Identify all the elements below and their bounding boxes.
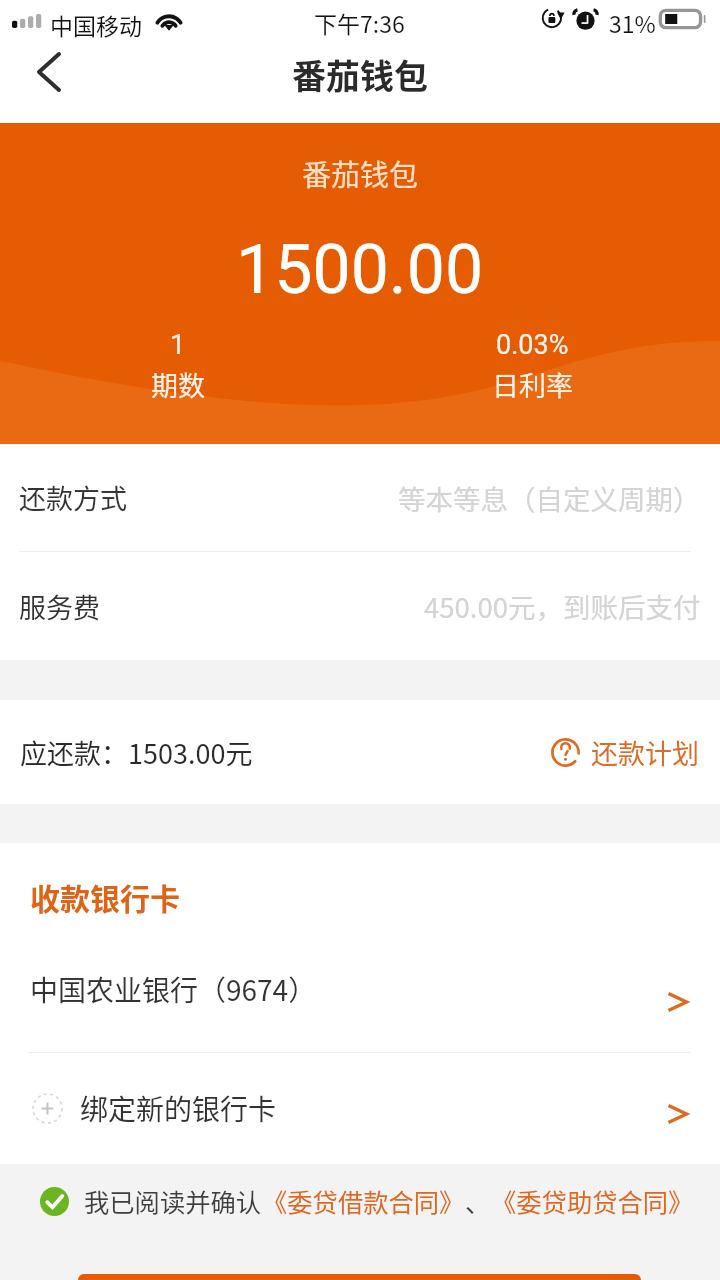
staticText: 1500.00 bbox=[236, 230, 484, 310]
button[interactable]: 还款方式 bbox=[0, 444, 720, 551]
button[interactable]: 绑定新的银行卡 bbox=[0, 1053, 720, 1164]
staticText: 450.00元，到账后支付 bbox=[424, 586, 701, 626]
staticText: 服务费 bbox=[19, 587, 100, 626]
staticText: 还款计划 bbox=[591, 733, 699, 772]
staticText: 绑定新的银行卡 bbox=[80, 1088, 277, 1129]
staticText: 31% bbox=[609, 6, 656, 39]
button[interactable]: 中国农业银行（9674） bbox=[0, 927, 720, 1052]
staticText: 还款方式 bbox=[19, 478, 127, 517]
staticText: 收款银行卡 bbox=[30, 875, 180, 918]
staticText: 下午7:36 bbox=[314, 6, 405, 39]
staticText: 0.03% bbox=[496, 329, 569, 361]
staticText: 我已阅读并确认 bbox=[84, 1183, 262, 1220]
button[interactable]: 还款计划 bbox=[551, 733, 699, 772]
staticText: 日利率 bbox=[492, 365, 573, 404]
staticText: 等本等息（自定义周期） bbox=[398, 478, 701, 518]
staticText: 应还款：1503.00元 bbox=[20, 733, 253, 772]
button[interactable]: 服务费 bbox=[0, 552, 720, 660]
staticText: 番茄钱包 bbox=[292, 50, 428, 99]
staticText: 《委贷借款合同》 bbox=[262, 1183, 465, 1220]
staticText: 1 bbox=[170, 329, 186, 361]
button[interactable]: 确认借款 bbox=[78, 1274, 641, 1280]
button[interactable]: Agreement checked bbox=[40, 1187, 69, 1216]
staticText: 期数 bbox=[151, 365, 205, 404]
button[interactable]: Back bbox=[0, 44, 98, 123]
staticText: 中国农业银行（9674） bbox=[30, 969, 317, 1010]
staticText: 中国移动 bbox=[50, 8, 142, 41]
staticText: 番茄钱包 bbox=[302, 152, 419, 194]
staticText: 《委贷助贷合同》 bbox=[491, 1183, 694, 1220]
staticText: 、 bbox=[465, 1183, 491, 1220]
